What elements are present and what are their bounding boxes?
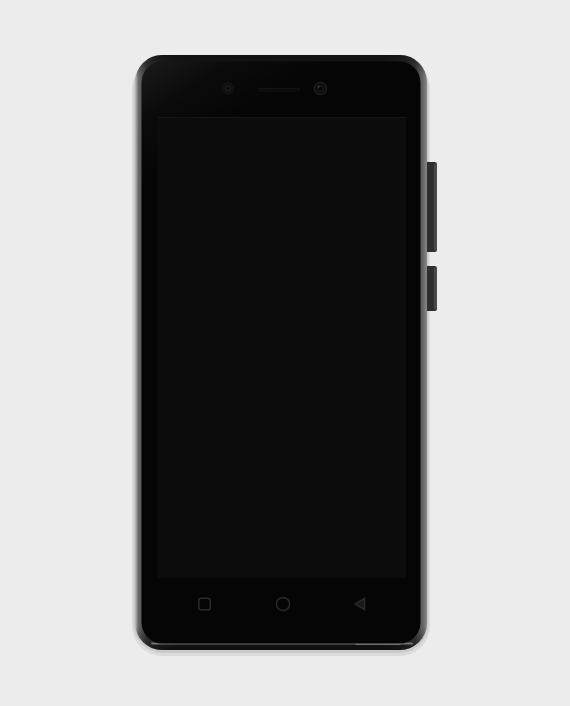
button[interactable]: Phone device <box>135 55 427 650</box>
